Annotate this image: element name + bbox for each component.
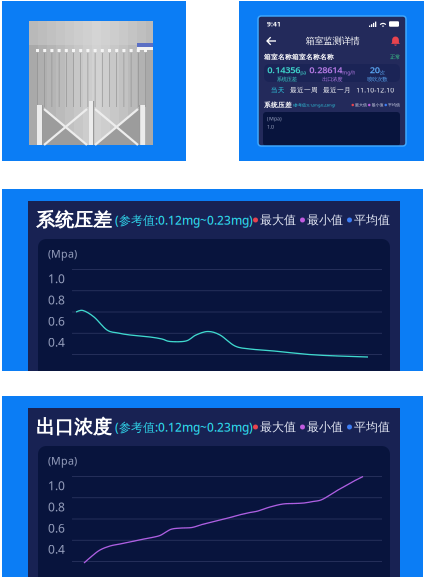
staticText: 最小值: [307, 420, 343, 434]
staticText: 最大值: [260, 420, 296, 434]
staticText: 9:41: [267, 20, 281, 28]
staticText: mg/h: [342, 69, 355, 76]
staticText: 最小值: [307, 213, 343, 227]
staticText: (参考值:0.12mg~0.23mg): [112, 419, 253, 435]
staticText: 0.14356: [267, 63, 300, 76]
staticText: 0.8: [48, 499, 65, 515]
staticText: 0.4: [48, 334, 65, 350]
staticText: (Mpa): [48, 453, 77, 468]
staticText: 最大值: [355, 102, 367, 107]
staticText: 箱室名称箱室名称名称: [264, 53, 334, 61]
staticText: 系统压差: [264, 101, 292, 109]
staticText: 次: [380, 69, 385, 76]
staticText: 系统压差: [36, 208, 112, 231]
staticText: 11.10-12.10: [356, 86, 394, 94]
staticText: pa: [300, 69, 306, 76]
staticText: 最近一月: [323, 86, 351, 94]
staticText: 喷吹次数: [367, 76, 387, 82]
staticText: (Mpa): [48, 246, 77, 261]
staticText: 1.0: [48, 478, 65, 493]
staticText: 箱室监测详情: [305, 35, 359, 47]
staticText: 最小值: [371, 102, 383, 107]
staticText: 正常: [390, 54, 400, 60]
staticText: 出口浓度: [36, 415, 112, 438]
staticText: 0.28614: [309, 63, 342, 76]
staticText: (参考值:0.12mg~0.23mg): [112, 212, 253, 228]
staticText: 0.6: [48, 313, 65, 329]
staticText: 当天: [271, 86, 285, 94]
staticText: 最大值: [260, 213, 296, 227]
staticText: 20: [370, 63, 380, 76]
staticText: 最近一周: [290, 86, 318, 94]
button[interactable]: Notifications: [390, 35, 399, 46]
staticText: 平均值: [388, 102, 400, 107]
staticText: (Mpa): [267, 115, 282, 122]
staticText: (参考值:0.12mg-0.23mg): [293, 102, 335, 108]
staticText: 平均值: [354, 420, 390, 434]
staticText: 0.8: [48, 292, 65, 308]
staticText: 系统压差: [277, 76, 297, 82]
staticText: 出口浓度: [322, 76, 342, 82]
staticText: 0.6: [48, 520, 65, 536]
staticText: 0.4: [48, 541, 65, 557]
staticText: 1.0: [267, 123, 274, 130]
staticText: 1.0: [48, 271, 65, 286]
button[interactable]: Back: [265, 36, 276, 46]
staticText: 平均值: [354, 213, 390, 227]
